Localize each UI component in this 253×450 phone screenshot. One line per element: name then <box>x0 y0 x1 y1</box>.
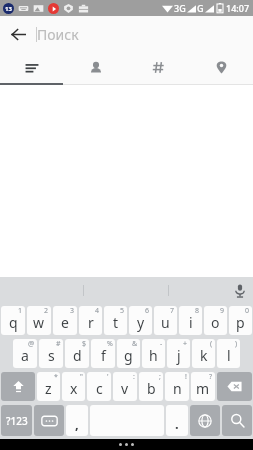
staticText: v <box>121 379 129 398</box>
button[interactable]: Backspace <box>217 372 252 401</box>
button[interactable]: ?123 <box>1 405 32 436</box>
button[interactable]: x <box>62 372 85 401</box>
staticText: d <box>73 346 82 365</box>
button[interactable]: t <box>104 306 127 335</box>
button[interactable]: p <box>229 306 252 335</box>
staticText: 3 <box>70 306 75 316</box>
staticText: a <box>21 346 29 365</box>
button[interactable]: List <box>0 52 64 83</box>
staticText: 14:07 <box>226 2 250 14</box>
staticText: , <box>75 415 79 433</box>
button[interactable]: b <box>139 372 163 401</box>
staticText: % <box>107 339 113 349</box>
button[interactable]: Change language <box>190 405 220 436</box>
button[interactable]: y <box>129 306 152 335</box>
staticText: q <box>9 313 18 332</box>
staticText: p <box>236 313 245 332</box>
staticText: g <box>124 346 133 365</box>
button[interactable]: v <box>113 372 137 401</box>
staticText: # <box>56 339 61 349</box>
button[interactable]: g <box>117 339 140 368</box>
button[interactable]: Shift <box>1 372 35 401</box>
staticText: ) <box>235 339 238 349</box>
staticText: y <box>137 313 145 332</box>
staticText: : <box>133 372 135 382</box>
staticText: h <box>149 346 158 365</box>
staticText: w <box>33 313 45 332</box>
staticText: n <box>173 379 182 398</box>
staticText: ( <box>210 339 213 349</box>
staticText: ?123 <box>6 414 28 428</box>
button[interactable]: z <box>37 372 60 401</box>
button[interactable]: m <box>191 372 215 401</box>
button[interactable]: e <box>53 306 77 335</box>
staticText: ' <box>107 372 109 382</box>
staticText: 1 <box>18 306 23 316</box>
staticText: z <box>45 379 52 398</box>
button[interactable]: j <box>167 339 190 368</box>
staticText: + <box>183 339 188 349</box>
staticText: G <box>197 2 204 14</box>
staticText: j <box>177 346 181 365</box>
staticText: 8 <box>195 306 200 316</box>
staticText: ? <box>209 372 213 382</box>
staticText: i <box>189 313 193 332</box>
button[interactable]: c <box>87 372 111 401</box>
button[interactable]: k <box>192 339 215 368</box>
staticText: 9 <box>220 306 225 316</box>
staticText: ! <box>185 372 187 382</box>
staticText: k <box>200 346 208 365</box>
button[interactable]: w <box>27 306 51 335</box>
staticText: u <box>161 313 170 332</box>
staticText: 6 <box>145 306 150 316</box>
button[interactable]: Tags <box>127 52 190 83</box>
button[interactable]: d <box>65 339 89 368</box>
staticText: r <box>88 313 94 332</box>
button[interactable]: r <box>79 306 102 335</box>
staticText: f <box>101 346 106 365</box>
staticText: 13 <box>5 5 12 13</box>
staticText: m <box>196 379 210 398</box>
button[interactable]: Search <box>222 405 252 436</box>
staticText: e <box>61 313 69 332</box>
staticText: 5 <box>120 306 125 316</box>
staticText: c <box>96 379 103 398</box>
button[interactable]: Voice input <box>226 277 253 304</box>
staticText: Поиск <box>37 25 79 44</box>
staticText: " <box>80 372 83 382</box>
button[interactable]: , <box>66 405 88 436</box>
staticText: l <box>227 346 231 365</box>
button[interactable]: i <box>179 306 202 335</box>
staticText: * <box>54 372 58 382</box>
button[interactable]: f <box>91 339 115 368</box>
button[interactable]: . <box>166 405 188 436</box>
button[interactable]: q <box>1 306 25 335</box>
staticText: @ <box>28 339 35 349</box>
button[interactable]: a <box>13 339 37 368</box>
staticText: b <box>147 379 156 398</box>
button[interactable]: h <box>142 339 165 368</box>
staticText: $ <box>82 339 87 349</box>
button[interactable]: Emoji <box>34 405 64 436</box>
staticText: - <box>160 339 163 349</box>
staticText: s <box>48 346 55 365</box>
staticText: ; <box>159 372 161 382</box>
staticText: . <box>175 415 179 433</box>
staticText: & <box>132 339 138 349</box>
staticText: 2 <box>44 306 49 316</box>
button[interactable]: l <box>217 339 240 368</box>
staticText: o <box>211 313 220 332</box>
staticText: 0 <box>245 306 250 316</box>
button[interactable]: Places <box>190 52 253 83</box>
staticText: x <box>70 379 78 398</box>
button[interactable]: Back <box>0 16 36 52</box>
staticText: 4 <box>95 306 100 316</box>
staticText: 3G <box>174 2 186 14</box>
button[interactable]: n <box>165 372 189 401</box>
button[interactable]: People <box>64 52 127 83</box>
button[interactable]: u <box>154 306 177 335</box>
staticText: t <box>113 313 119 332</box>
button[interactable]: o <box>204 306 227 335</box>
button[interactable]: s <box>39 339 63 368</box>
